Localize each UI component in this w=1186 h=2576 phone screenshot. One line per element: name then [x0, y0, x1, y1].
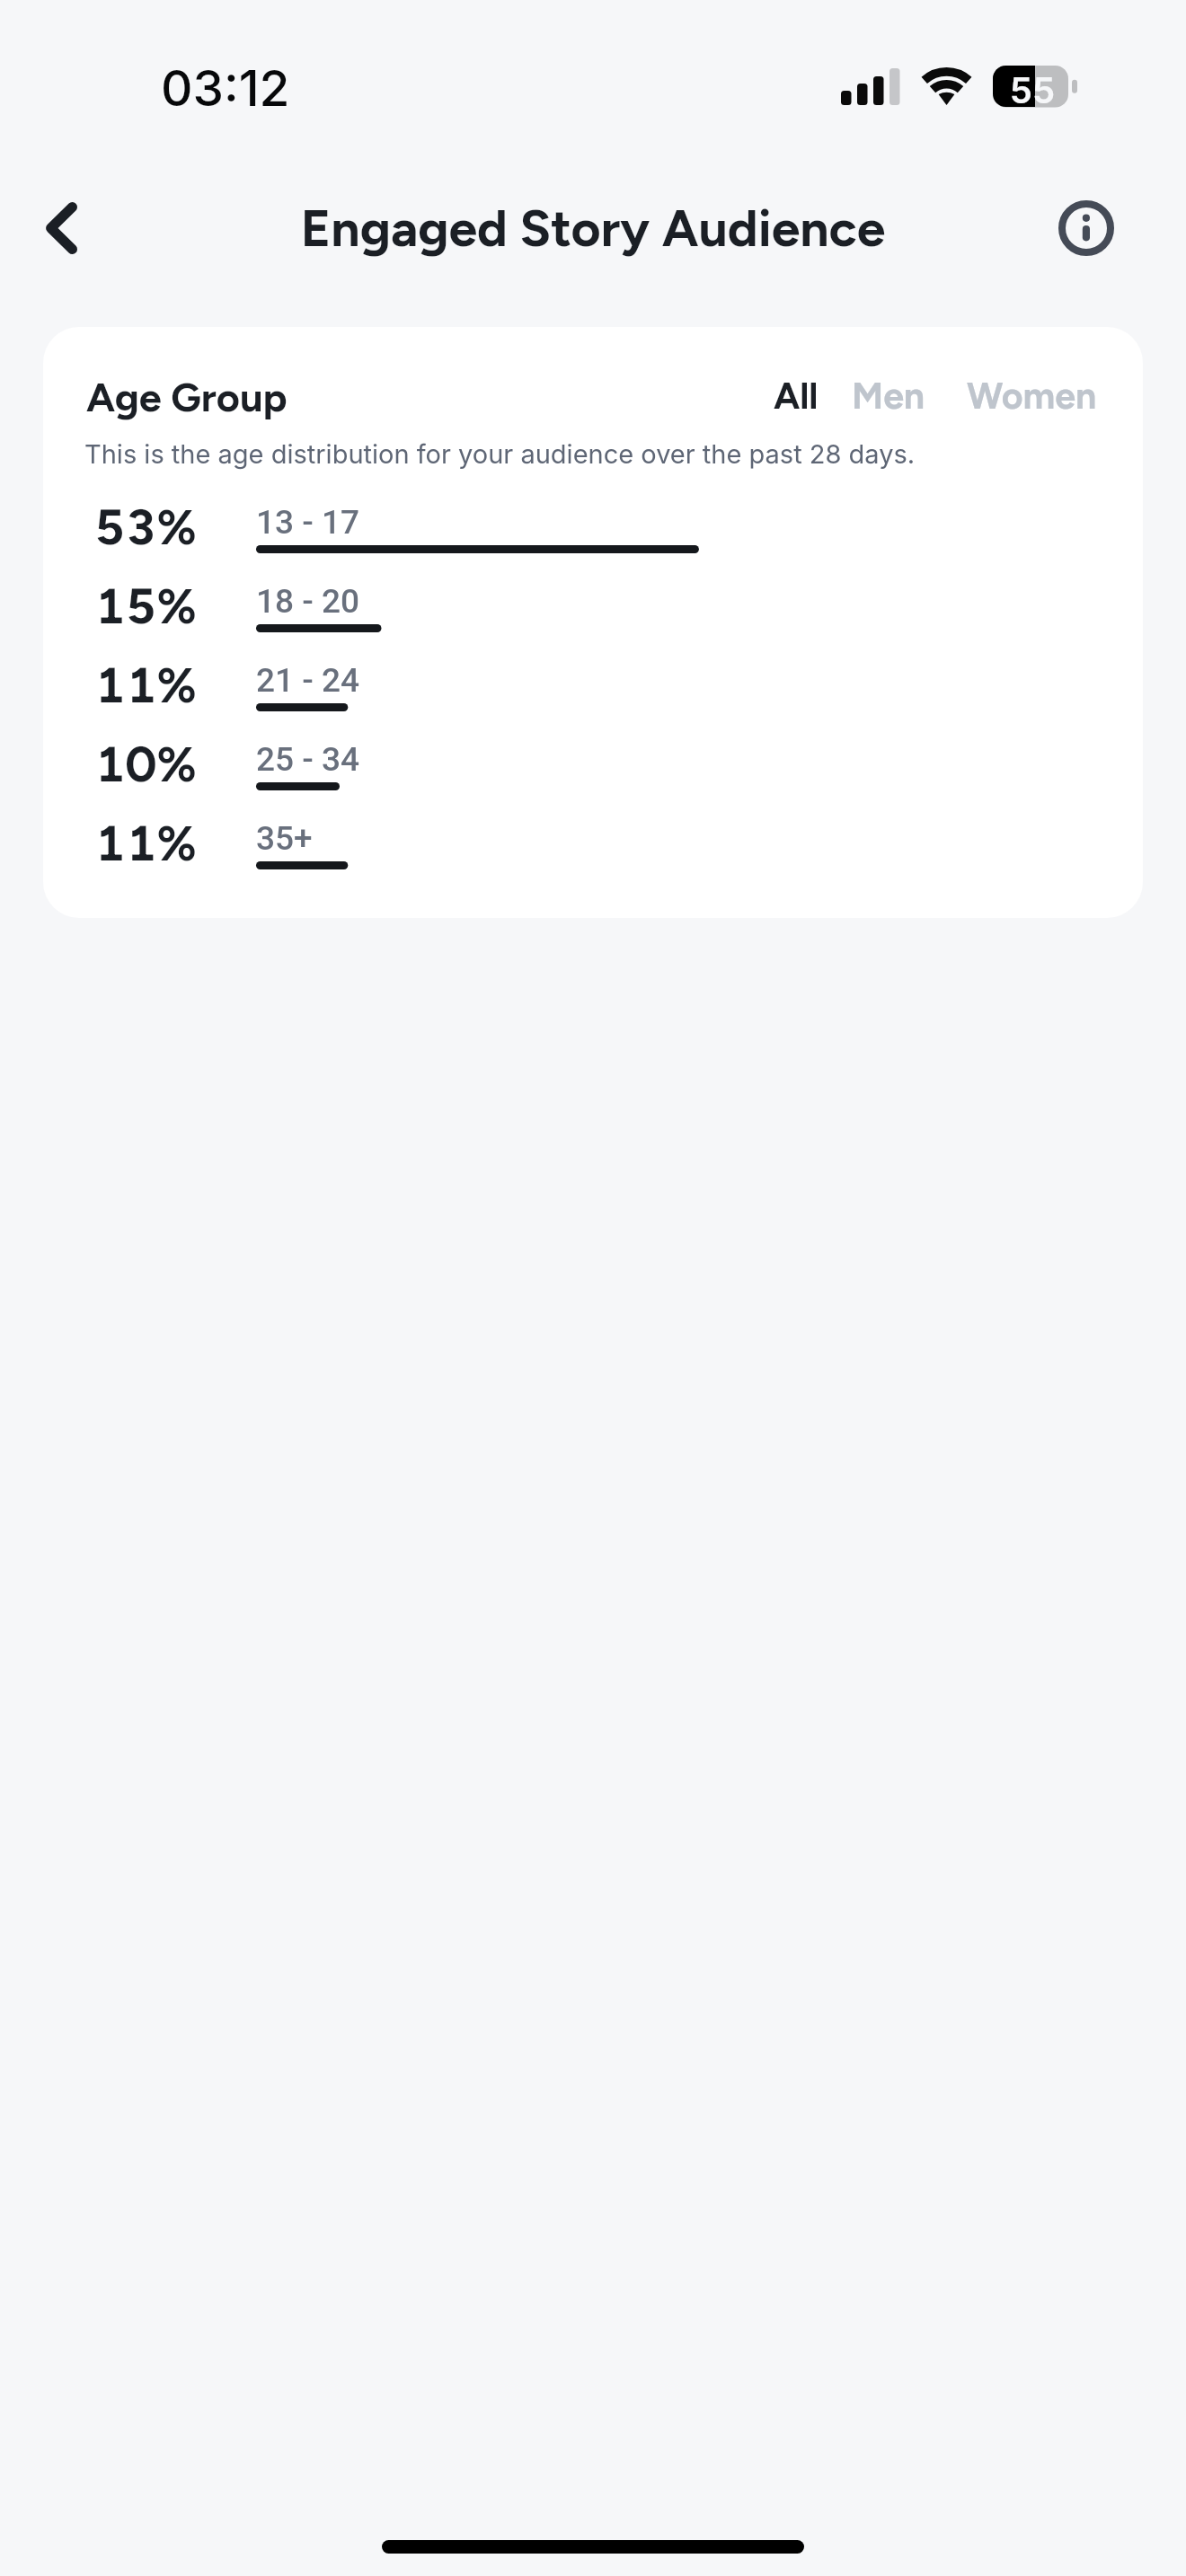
- button[interactable]: [61, 649, 1125, 721]
- button[interactable]: Women: [961, 357, 1102, 434]
- button[interactable]: [61, 807, 1125, 879]
- staticText: 53%: [83, 498, 197, 557]
- staticText: Engaged Story Audience: [0, 198, 1186, 259]
- button[interactable]: About this metric: [1054, 196, 1119, 260]
- button[interactable]: [61, 570, 1125, 642]
- staticText: 11%: [83, 656, 197, 715]
- staticText: 18 - 20: [256, 582, 360, 621]
- staticText: 13 - 17: [256, 503, 360, 542]
- button[interactable]: [61, 728, 1125, 800]
- staticText: 15%: [83, 577, 197, 636]
- staticText: Women: [967, 374, 1097, 418]
- button[interactable]: Back: [13, 188, 93, 269]
- staticText: 21 - 24: [256, 661, 360, 700]
- staticText: All: [774, 374, 819, 418]
- staticText: 03:12: [161, 58, 290, 119]
- staticText: This is the age distribution for your au…: [84, 438, 916, 470]
- staticText: 25 - 34: [256, 740, 360, 779]
- staticText: Men: [852, 374, 925, 418]
- button[interactable]: [61, 491, 1125, 563]
- staticText: 55: [993, 68, 1072, 111]
- staticText: 35+: [256, 819, 313, 858]
- button[interactable]: Men: [846, 357, 931, 434]
- staticText: 11%: [83, 814, 197, 873]
- button[interactable]: All: [768, 357, 824, 434]
- staticText: 10%: [83, 735, 197, 794]
- staticText: Age Group: [86, 373, 288, 421]
